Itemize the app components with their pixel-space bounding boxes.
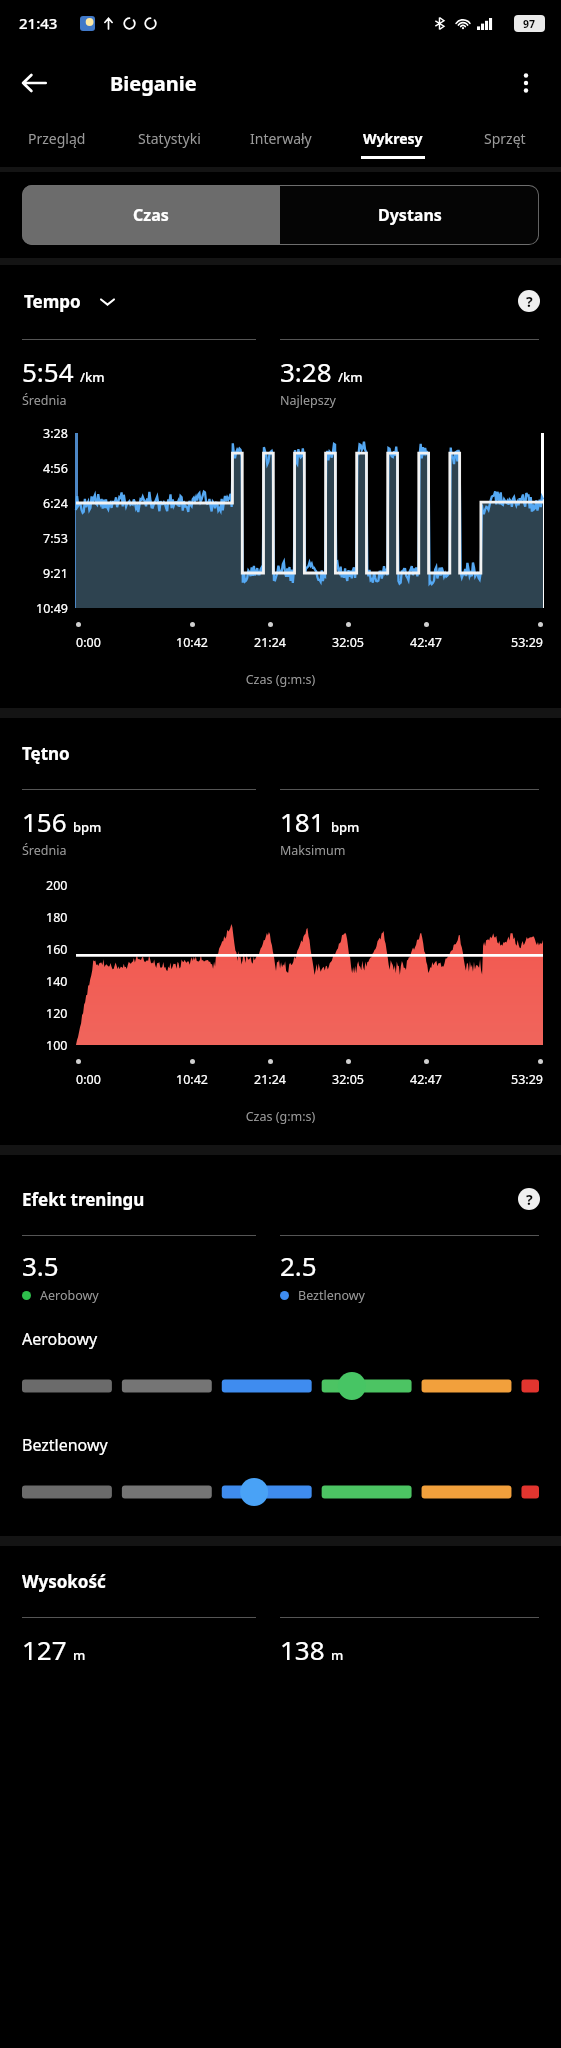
staticText: 2.5 [280,1248,317,1283]
button[interactable]: Tempo [22,284,118,319]
staticText: 10:49 [36,600,68,617]
staticText: 21:24 [254,634,286,651]
staticText: 0:00 [76,1071,101,1088]
staticText: 53:29 [511,634,543,651]
staticText: 181 [280,804,325,839]
staticText: Tempo [24,290,81,313]
staticText: 3:28 [43,425,68,442]
button[interactable] [22,1480,539,1504]
staticText: Statystyki [138,129,201,148]
staticText: Najlepszy [280,392,336,409]
staticText: 7:53 [43,530,68,547]
staticText: 120 [46,1005,68,1022]
button[interactable] [22,1374,539,1398]
button[interactable]: Przegląd [0,120,113,167]
staticText: Bieganie [110,70,197,97]
staticText: Efekt treningu [22,1188,145,1211]
button[interactable]: Wykresy [337,120,449,167]
button[interactable]: Help [509,281,549,321]
staticText: Wysokość [22,1570,106,1593]
staticText: 42:47 [410,634,442,651]
staticText: 3.5 [22,1248,59,1283]
button[interactable]: Czas [22,185,280,245]
staticText: Beztlenowy [298,1287,365,1304]
staticText: ? [526,1190,533,1209]
staticText: Maksimum [280,842,346,859]
staticText: Aerobowy [40,1287,99,1304]
staticText: Interwały [250,129,312,148]
staticText: Średnia [22,392,67,409]
staticText: Czas (g:m:s) [0,1108,561,1125]
staticText: 21:24 [254,1071,286,1088]
staticText: 32:05 [332,634,364,651]
staticText: 100 [46,1037,68,1054]
staticText: Aerobowy [22,1328,98,1350]
staticText: Sprzęt [484,129,526,148]
staticText: Średnia [22,842,67,859]
staticText: 200 [46,877,68,894]
staticText: 42:47 [410,1071,442,1088]
staticText: 156 [22,804,67,839]
staticText: bpm [73,818,102,836]
staticText: 32:05 [332,1071,364,1088]
staticText: 140 [46,973,68,990]
staticText: ? [526,292,533,311]
staticText: 21:43 [19,13,58,33]
staticText: 3:28 [280,354,332,389]
staticText: 97 [523,17,536,31]
staticText: 127 [22,1632,67,1667]
staticText: 0:00 [76,634,101,651]
staticText: 160 [46,941,68,958]
staticText: 10:42 [176,1071,208,1088]
staticText: Czas (g:m:s) [0,671,561,688]
button[interactable]: Help [509,1179,549,1219]
button[interactable]: Back [9,58,59,108]
staticText: /km [338,368,363,386]
button[interactable]: Sprzęt [449,120,561,167]
staticText: Beztlenowy [22,1434,108,1456]
staticText: Czas [133,204,169,226]
staticText: 180 [46,909,68,926]
staticText: bpm [331,818,360,836]
staticText: 9:21 [43,565,68,582]
staticText: 53:29 [511,1071,543,1088]
staticText: 138 [280,1632,325,1667]
staticText: 4:56 [43,460,68,477]
staticText: /km [80,368,105,386]
button[interactable]: Dystans [280,185,539,245]
staticText: Przegląd [28,129,86,148]
button[interactable]: Interwały [225,120,337,167]
staticText: m [331,1646,344,1664]
staticText: 6:24 [43,495,68,512]
staticText: Dystans [378,204,442,226]
staticText: m [73,1646,86,1664]
staticText: Wykresy [363,129,423,148]
staticText: 10:42 [176,634,208,651]
button[interactable]: More options [501,58,551,108]
staticText: Tętno [22,742,70,765]
button[interactable]: Statystyki [113,120,225,167]
staticText: 5:54 [22,354,74,389]
